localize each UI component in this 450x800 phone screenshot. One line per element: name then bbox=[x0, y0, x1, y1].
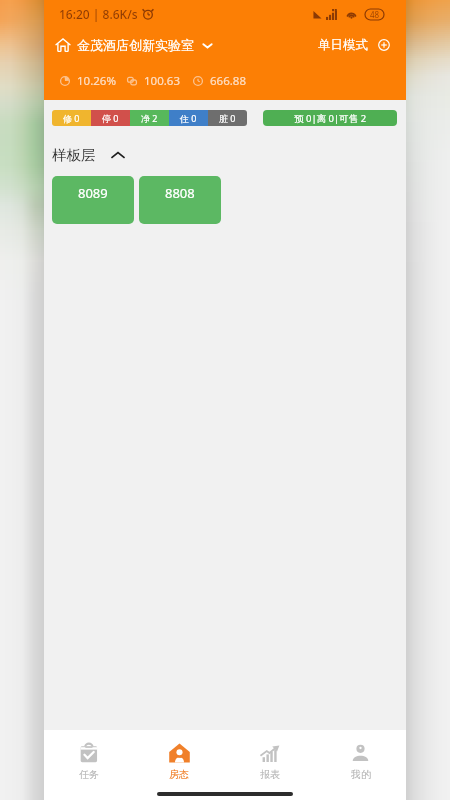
button[interactable]: 金茂酒店创新实验室 bbox=[55, 33, 214, 57]
staticText: 住 0 bbox=[180, 112, 197, 124]
staticText: 报表 bbox=[260, 768, 280, 779]
button[interactable]: 预 0|离 0|可售 2 bbox=[263, 110, 397, 126]
button[interactable]: 我的 bbox=[315, 743, 406, 779]
button[interactable]: 脏 0 bbox=[208, 110, 247, 126]
staticText: 48 bbox=[370, 9, 380, 20]
staticText: 我的 bbox=[351, 768, 371, 779]
staticText: 房态 bbox=[169, 768, 189, 779]
staticText: 8089 bbox=[78, 184, 108, 202]
button[interactable]: 样板层 bbox=[52, 144, 125, 166]
staticText: 任务 bbox=[79, 768, 99, 779]
button[interactable]: 8808 bbox=[139, 176, 221, 224]
button[interactable]: 住 0 bbox=[169, 110, 208, 126]
staticText: 修 0 bbox=[63, 112, 80, 124]
staticText: 净 2 bbox=[141, 112, 158, 124]
staticText: 样板层 bbox=[52, 146, 96, 164]
button[interactable]: 修 0 bbox=[52, 110, 91, 126]
button[interactable]: 房态 bbox=[134, 743, 224, 779]
staticText: 脏 0 bbox=[219, 112, 236, 124]
staticText: 停 0 bbox=[102, 112, 119, 124]
button[interactable]: 净 2 bbox=[130, 110, 169, 126]
staticText: 10.26% bbox=[77, 73, 116, 89]
button[interactable]: 报表 bbox=[224, 743, 315, 779]
button[interactable]: 10.26% bbox=[60, 73, 127, 89]
button[interactable]: 666.88 bbox=[193, 73, 259, 89]
staticText: 金茂酒店创新实验室 bbox=[77, 37, 194, 53]
staticText: 16:20 | 8.6K/s bbox=[59, 6, 138, 22]
button[interactable]: 100.63 bbox=[127, 73, 193, 89]
staticText: 预 0|离 0|可售 2 bbox=[294, 112, 367, 125]
staticText: 666.88 bbox=[210, 73, 246, 89]
button[interactable]: 单日模式 bbox=[318, 33, 390, 57]
staticText: 8808 bbox=[165, 184, 195, 202]
staticText: 单日模式 bbox=[318, 37, 368, 53]
button[interactable]: 停 0 bbox=[91, 110, 130, 126]
button[interactable]: 任务 bbox=[44, 743, 134, 779]
staticText: 100.63 bbox=[144, 73, 180, 89]
button[interactable]: 8089 bbox=[52, 176, 134, 224]
